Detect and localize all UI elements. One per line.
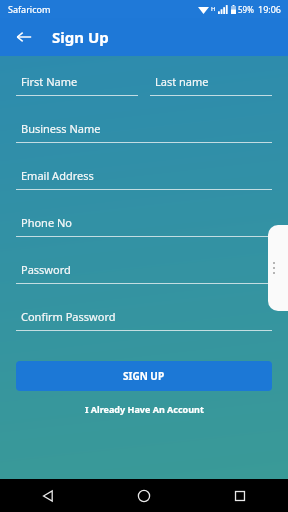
button[interactable]: Last name [150,74,272,96]
staticText: Email Address [21,168,94,183]
button[interactable]: Password [16,262,272,284]
staticText: Phone No [21,215,72,230]
staticText: Last name [155,74,209,89]
staticText: SIGN UP [123,369,165,383]
staticText: Confirm Password [21,309,116,324]
staticText: H [211,5,216,13]
button[interactable]: I Already Have An Account [0,403,288,415]
staticText: Password [21,262,71,277]
staticText: 19:06 [258,3,282,15]
staticText: 59% [238,4,254,15]
button[interactable]: Confirm Password [16,309,272,331]
staticText: Safaricom [8,3,51,15]
button[interactable]: Back [10,23,38,51]
button[interactable]: First Name [16,74,138,96]
button[interactable]: SIGN UP [16,361,272,391]
button[interactable]: Back [0,479,96,512]
staticText: Business Name [21,121,101,136]
staticText: First Name [21,74,78,89]
staticText: Sign Up [52,27,109,47]
button[interactable]: Business Name [16,121,272,143]
button[interactable]: Home [96,479,192,512]
button[interactable]: Email Address [16,168,272,190]
button[interactable]: Phone No [16,215,272,237]
button[interactable]: Open side panel [268,225,288,311]
staticText: I Already Have An Account [85,403,204,415]
button[interactable]: Recent apps [192,479,288,512]
